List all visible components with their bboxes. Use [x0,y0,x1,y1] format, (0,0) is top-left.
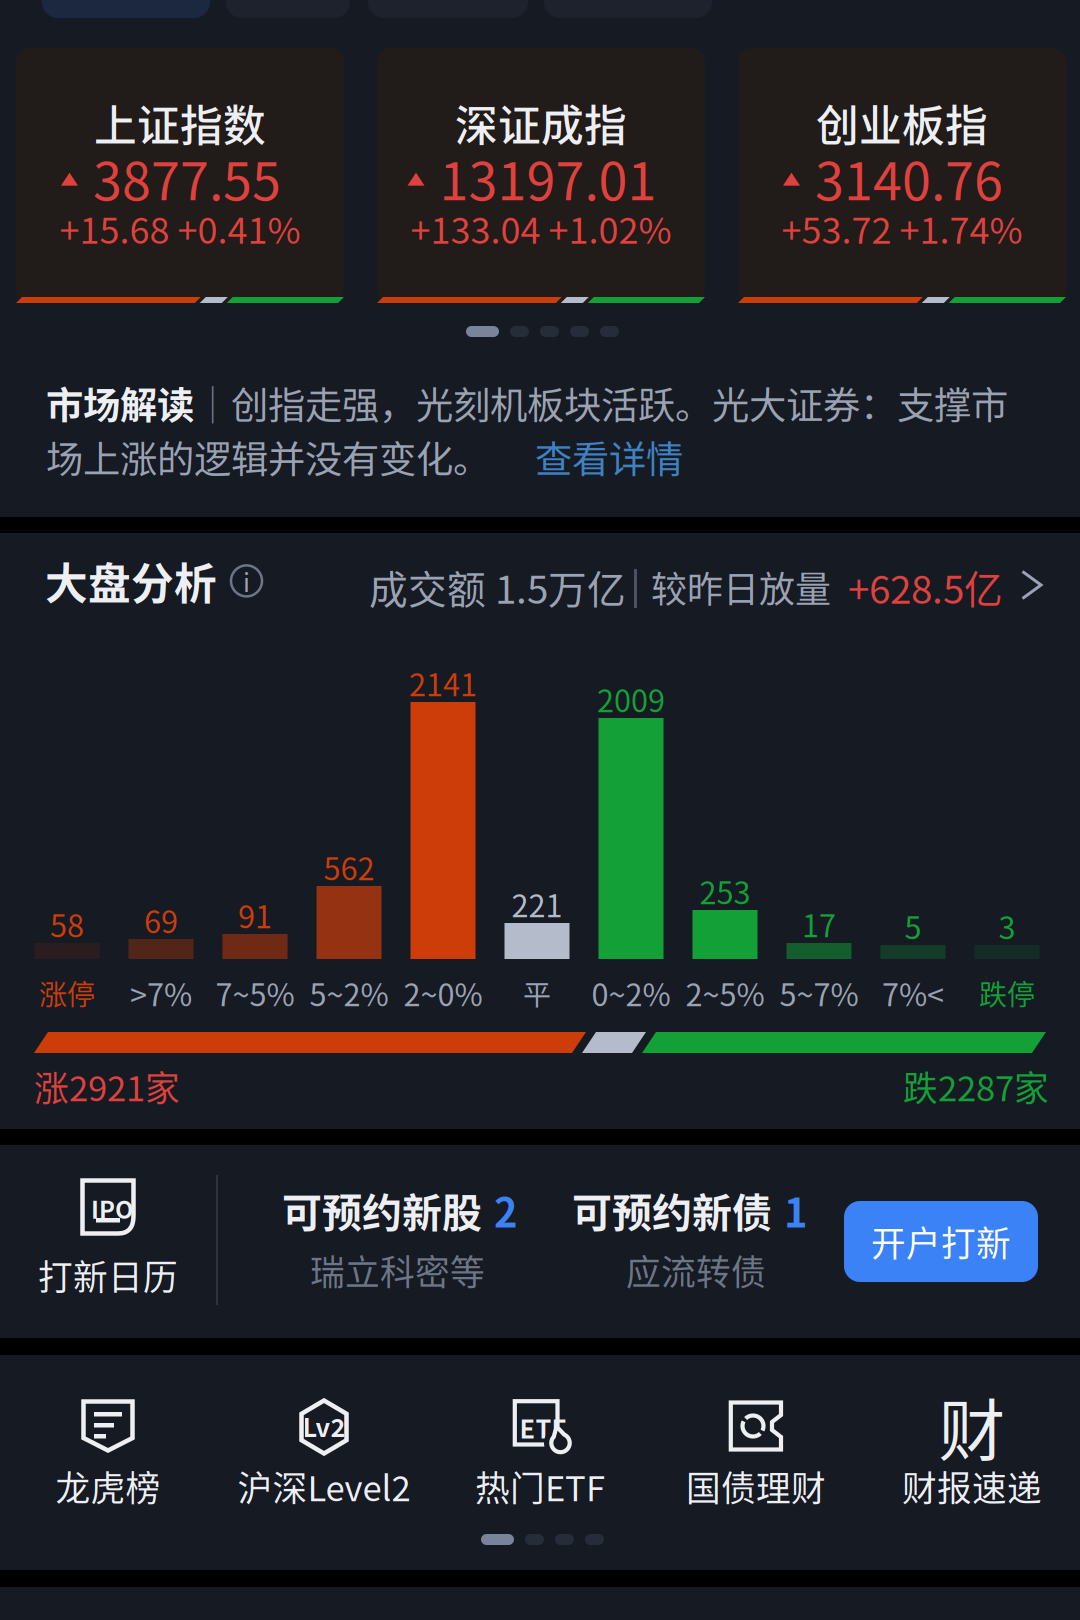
staticText: 瑞立科密等 [310,1245,485,1295]
staticText: 可预约新债 [572,1181,772,1239]
staticText: 2141 [409,661,477,705]
staticText: 市场解读 [46,376,194,430]
staticText: 财报速递 [902,1461,1042,1511]
button[interactable]: 上证指数 [16,48,344,303]
staticText: 7~5% [215,971,294,1015]
button[interactable]: 国债理财 [648,1398,864,1548]
staticText: 可预约新股 [282,1181,482,1239]
staticText: 2~0% [403,971,482,1015]
staticText: 创业板指 [816,92,988,154]
staticText: 91 [238,893,272,937]
staticText: 2~5% [685,971,764,1015]
button[interactable]: Lv2 [216,1398,432,1548]
staticText: i [243,562,250,599]
staticText: 2 [494,1181,518,1239]
staticText: 2009 [597,677,665,721]
staticText: 17 [802,902,836,946]
staticText: +15.68 +0.41% [59,202,300,254]
staticText: 3 [998,904,1015,948]
staticText: 5~7% [779,971,858,1015]
staticText: +133.04 +1.02% [410,202,671,254]
staticText: 平 [523,973,551,1013]
staticText: 涨停 [39,973,95,1013]
button[interactable]: 龙虎榜 [0,1398,216,1548]
staticText: 较昨日放量 [651,561,831,613]
staticText: 财 [938,1378,1005,1474]
staticText: 5~2% [309,971,388,1015]
staticText: ETF [519,1409,566,1446]
staticText: 创指走强，光刻机板块活跃。光大证券：支撑市 [231,376,1008,430]
button[interactable]: 财 [864,1398,1080,1548]
staticText: ｜ [194,376,231,430]
staticText: 国债理财 [686,1461,826,1511]
staticText: 成交额 1.5万亿 [369,559,626,615]
staticText: 5 [904,904,921,948]
staticText: 3140.76 [815,140,1003,215]
button[interactable]: 开户打新 [844,1201,1038,1282]
staticText: 热门ETF [475,1461,605,1511]
staticText: 253 [699,869,750,913]
staticText: 上证指数 [94,92,266,154]
staticText: 开户打新 [871,1216,1011,1267]
staticText: 龙虎榜 [55,1461,160,1511]
button[interactable]: 查看详情 [535,430,683,484]
staticText: 221 [511,882,562,926]
staticText: IPO [91,1191,133,1226]
staticText: 13197.01 [439,140,656,215]
button[interactable]: 创业板指 [738,48,1066,303]
staticText: Lv2 [302,1408,345,1444]
staticText: 7%< [882,971,944,1015]
staticText: 应流转债 [626,1245,766,1295]
button[interactable]: ETF [432,1398,648,1548]
staticText: 58 [50,902,84,946]
staticText: +628.5亿 [848,559,1003,615]
button[interactable]: 深证成指 [377,48,705,303]
staticText: 跌停 [979,973,1035,1013]
staticText: 69 [144,898,178,942]
staticText: 场上涨的逻辑并没有变化。 [46,430,490,484]
staticText: 跌2287家 [903,1061,1049,1111]
button[interactable]: IPO [0,1145,1080,1338]
staticText: 562 [323,845,374,889]
staticText: 1 [784,1181,808,1239]
staticText: 0~2% [591,971,670,1015]
staticText: >7% [130,971,192,1015]
staticText: 沪深Level2 [237,1461,410,1511]
staticText: 3877.55 [93,140,281,215]
staticText: +53.72 +1.74% [781,202,1022,254]
staticText: 打新日历 [38,1250,178,1300]
staticText: 大盘分析 [45,550,217,612]
staticText: 深证成指 [455,92,627,154]
staticText: 涨2921家 [34,1061,180,1111]
staticText: 查看详情 [535,430,683,484]
